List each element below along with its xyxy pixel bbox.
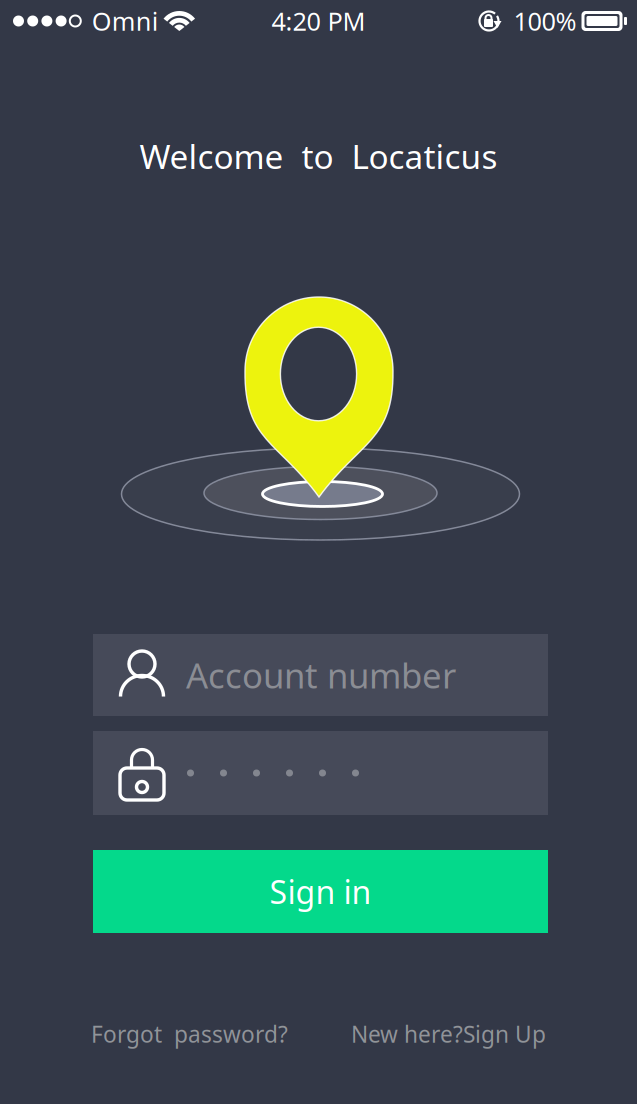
staticText: 100% xyxy=(513,4,576,38)
button[interactable]: Account number xyxy=(93,634,548,716)
staticText: Forgot password? xyxy=(91,1019,288,1049)
button[interactable]: Sign in xyxy=(93,850,548,933)
staticText: Omni xyxy=(92,4,159,38)
staticText: Welcome to Locaticus xyxy=(139,134,497,178)
staticText: New here?Sign Up xyxy=(351,1019,546,1049)
button[interactable]: Forgot password? xyxy=(91,1020,288,1048)
button[interactable]: New here?Sign Up xyxy=(351,1020,546,1048)
staticText: Sign in xyxy=(269,870,371,913)
staticText: 4:20 PM xyxy=(271,4,365,38)
staticText: Account number xyxy=(186,652,456,698)
button[interactable]: Password xyxy=(93,731,548,815)
